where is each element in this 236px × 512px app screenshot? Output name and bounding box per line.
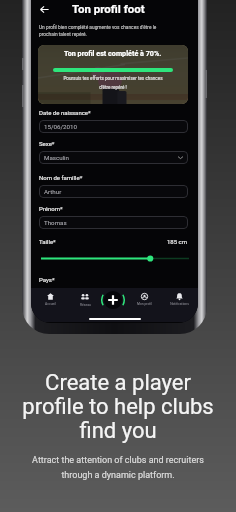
staticText: Arthur [44,188,62,195]
staticText: Pays* [39,276,55,283]
staticText: Notifications [170,302,189,306]
button[interactable]: Add [100,287,126,313]
staticText: 15/06/2010 [44,123,77,130]
staticText: Mon profil [137,302,152,306]
staticText: Attract the attention of clubs and recru… [32,455,204,480]
staticText: Accueil [45,302,56,306]
button[interactable]: 15/06/2010 [39,120,188,133]
staticText: Ton profil est complété à 70%. [64,49,162,57]
staticText: Un profil bien complété augmente vos cha… [39,25,157,37]
staticText: Date de naissance* [39,109,91,116]
button[interactable]: Réseau [69,291,101,307]
staticText: Masculin [44,154,70,161]
button[interactable]: Notifications [163,291,195,306]
staticText: Sexe* [39,140,55,147]
button[interactable]: Masculin [39,151,188,164]
button[interactable]: Mon profil [128,291,160,306]
button[interactable]: Arthur [39,185,188,198]
staticText: Prénom* [39,205,63,212]
staticText: Réseau [80,303,91,307]
staticText: 185 cm [167,238,188,245]
button[interactable]: Thomas [39,216,188,229]
button[interactable]: Height slider [40,255,190,262]
staticText: Create a player profile to help clubs fi… [22,370,214,443]
button[interactable]: Back [36,1,52,17]
staticText: Ton profil foot [72,2,145,15]
staticText: Poursuis tes efforts pour maximiser tes … [63,76,163,90]
staticText: Thomas [44,219,67,226]
staticText: Nom de famille* [39,174,83,181]
staticText: Taille* [39,238,56,245]
button[interactable]: Accueil [34,291,66,306]
